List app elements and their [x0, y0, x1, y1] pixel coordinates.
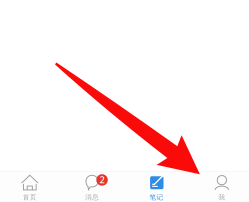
staticText: 2 — [99, 173, 104, 186]
button[interactable]: 2 — [62, 171, 124, 202]
staticText: 消息 — [85, 193, 99, 201]
staticText: 首页 — [23, 193, 37, 201]
button[interactable]: 我 — [187, 171, 249, 202]
staticText: 我 — [218, 193, 225, 201]
staticText: 笔记 — [149, 193, 163, 201]
button[interactable]: 笔记 — [124, 171, 187, 202]
button[interactable]: 首页 — [0, 171, 62, 202]
